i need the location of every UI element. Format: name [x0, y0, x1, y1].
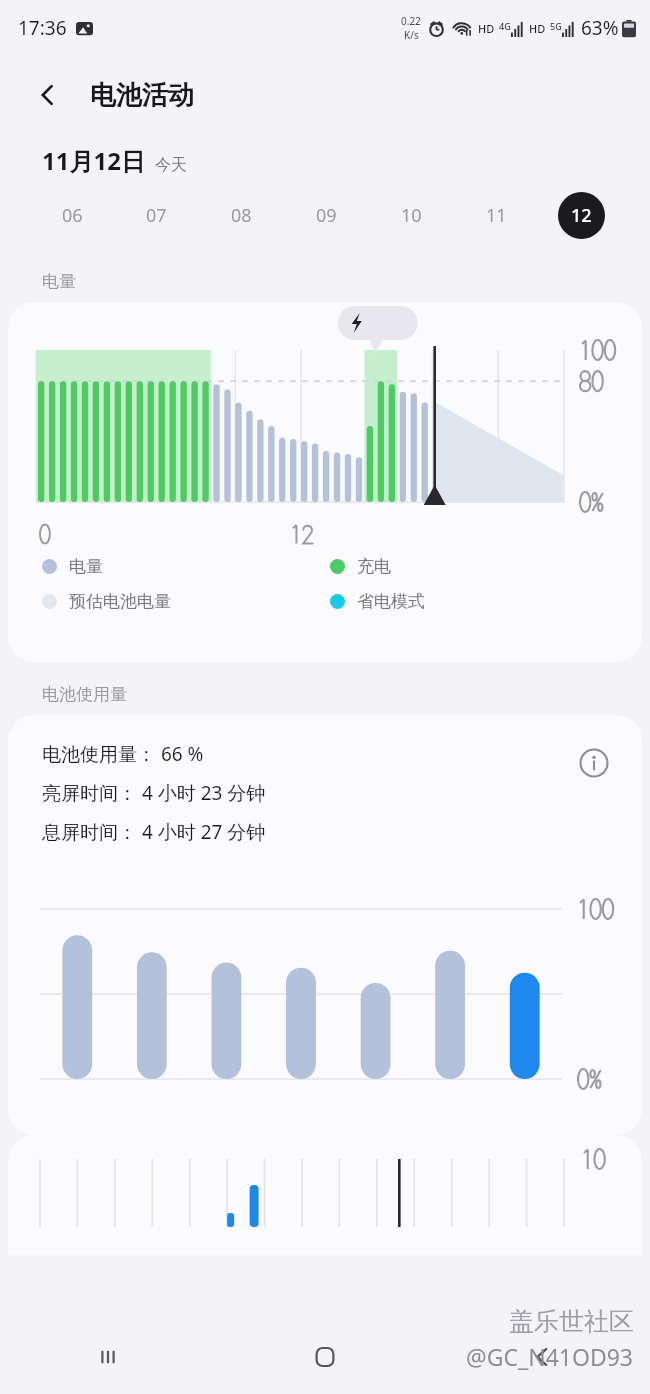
button[interactable]: 电池使用量： 66 % — [8, 715, 642, 1135]
staticText: 63% — [581, 15, 619, 41]
button[interactable]: 09 — [284, 177, 369, 253]
button[interactable]: 08 — [199, 177, 284, 253]
staticText: @GC_N41OD93 — [466, 1341, 634, 1372]
staticText: 08 — [231, 203, 252, 228]
staticText: 盖乐世社区 — [509, 1306, 634, 1337]
button[interactable]: 详细信息 — [572, 741, 616, 785]
staticText: 17:36 — [18, 15, 67, 41]
button[interactable]: 充电 — [330, 556, 618, 577]
button[interactable]: 返回 — [26, 73, 70, 117]
staticText: K/s — [404, 28, 419, 42]
button[interactable]: 主屏幕 — [216, 1320, 433, 1394]
staticText: 息屏时间： 4 小时 27 分钟 — [42, 819, 266, 845]
staticText: 06 — [62, 203, 83, 228]
staticText: 12 — [571, 203, 592, 228]
button[interactable]: 预估电池电量 — [42, 591, 330, 612]
button[interactable]: 返回 — [433, 1320, 650, 1394]
staticText: 电量 — [42, 271, 76, 292]
staticText: 4G — [499, 20, 511, 32]
button[interactable]: 07 — [114, 177, 199, 253]
staticText: 11 — [486, 203, 507, 228]
staticText: 10 — [401, 203, 422, 228]
staticText: 0.22 — [401, 14, 421, 28]
button[interactable]: 06 — [30, 177, 114, 253]
staticText: 预估电池电量 — [69, 591, 171, 612]
staticText: 省电模式 — [357, 591, 425, 612]
staticText: 电池使用量 — [42, 684, 127, 705]
staticText: HD — [529, 21, 546, 36]
staticText: HD — [478, 21, 495, 36]
staticText: 11月12日 — [42, 144, 145, 177]
button[interactable]: 最近任务 — [0, 1320, 216, 1394]
staticText: 电池使用量： 66 % — [42, 741, 204, 767]
staticText: 07 — [146, 203, 167, 228]
staticText: 电量 — [69, 556, 103, 577]
staticText: 5G — [550, 20, 562, 32]
button[interactable]: 10 — [369, 177, 454, 253]
staticText: 亮屏时间： 4 小时 23 分钟 — [42, 780, 266, 806]
staticText: 充电 — [357, 556, 391, 577]
button[interactable]: 11 — [454, 177, 539, 253]
button[interactable]: 电量 — [8, 302, 642, 662]
staticText: 09 — [316, 203, 337, 228]
button[interactable]: 电量 — [42, 556, 330, 577]
button[interactable]: 省电模式 — [330, 591, 618, 612]
button[interactable]: 12 — [539, 177, 624, 253]
staticText: 电池活动 — [90, 79, 194, 112]
staticText: 今天 — [155, 155, 187, 175]
